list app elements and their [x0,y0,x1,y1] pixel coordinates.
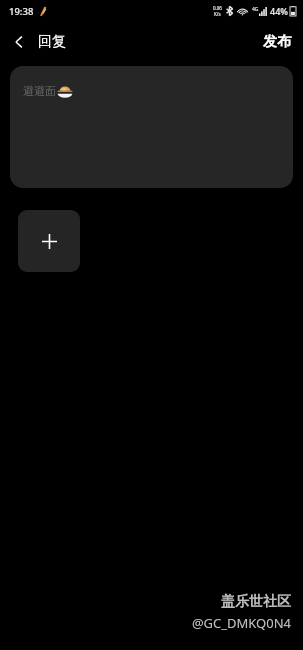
staticText: 4G [252,6,259,13]
staticText: 发布 [263,33,291,51]
button[interactable]: Add photo [18,210,80,272]
button[interactable]: 避避面 [10,66,293,188]
staticText: 回复 [38,33,66,51]
staticText: 0.06 [213,5,222,11]
other: Back [10,33,28,51]
staticText: 44% [270,5,288,17]
staticText: K/s [214,11,221,17]
staticText: 避避面 [23,84,56,98]
staticText: 盖乐世社区 [221,593,291,611]
staticText: @GC_DMKQ0N4 [191,614,291,632]
button[interactable]: Back [0,27,76,57]
button[interactable]: 发布 [251,25,303,59]
staticText: 19:38 [9,5,34,18]
